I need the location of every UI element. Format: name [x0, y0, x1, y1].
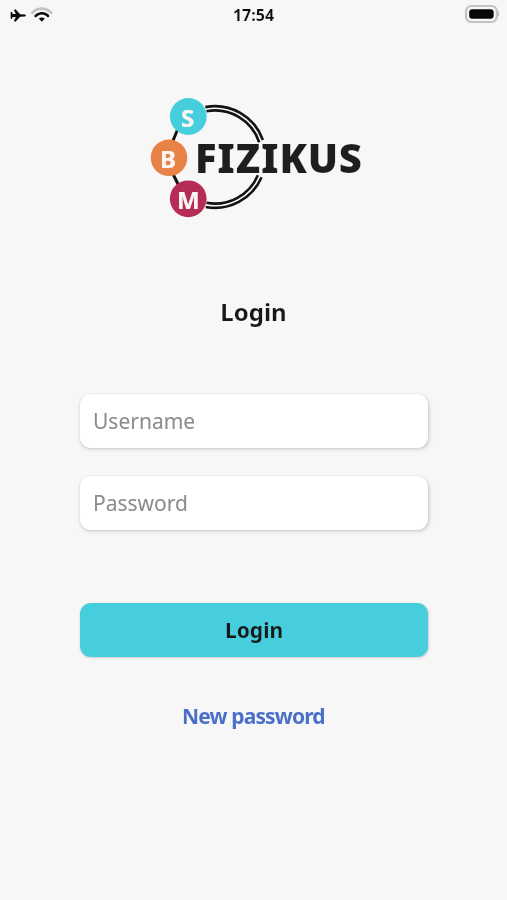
staticText: Password — [93, 489, 188, 518]
staticText: FIZIKUS — [195, 130, 363, 184]
button[interactable]: Password — [80, 476, 428, 530]
other: Wi-Fi — [31, 6, 53, 23]
staticText: B — [160, 142, 176, 174]
staticText: Username — [93, 407, 196, 436]
staticText: S — [181, 101, 195, 133]
button[interactable]: New password — [0, 700, 507, 732]
staticText: M — [177, 183, 200, 215]
button[interactable]: Username — [80, 394, 428, 448]
staticText: 17:54 — [0, 4, 507, 26]
other: Airplane mode — [10, 9, 26, 22]
staticText: Login — [225, 616, 284, 645]
staticText: Login — [0, 295, 507, 328]
button[interactable]: Login — [80, 603, 428, 657]
other: Battery full — [466, 6, 499, 22]
staticText: New password — [182, 702, 325, 731]
